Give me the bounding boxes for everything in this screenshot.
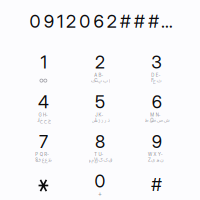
staticText: 7 <box>39 131 48 152</box>
staticText: 9 <box>152 131 162 152</box>
staticText: 0912062#### <box>29 10 173 32</box>
staticText: 2 <box>95 51 105 73</box>
staticText: MNO <box>150 112 163 117</box>
staticText: 4 <box>38 91 49 112</box>
staticText: ظ ع غ ف <box>35 155 51 165</box>
staticText: ن ه ی <box>151 155 163 165</box>
button[interactable]: 1 <box>15 42 72 82</box>
staticText: + <box>98 190 102 198</box>
staticText: JKL <box>95 112 105 117</box>
staticText: 3 <box>151 51 162 73</box>
button[interactable]: 4 <box>15 82 72 122</box>
button[interactable]: 7 <box>15 122 72 161</box>
staticText: ا ب پ ت <box>91 75 110 86</box>
staticText: 0 <box>95 171 106 192</box>
button[interactable]: 9 <box>128 122 185 161</box>
staticText: ش ص ض ط <box>144 115 169 125</box>
staticText: 1 <box>40 51 46 73</box>
staticText: 6 <box>152 91 162 112</box>
staticText: ث ج <box>152 75 161 86</box>
staticText: TUV <box>94 152 106 157</box>
staticText: ABC <box>94 72 106 78</box>
staticText: DEF <box>151 72 162 78</box>
button[interactable]: 3 <box>128 42 185 82</box>
staticText: PQRS <box>35 152 52 157</box>
button[interactable]: 2 <box>72 42 128 82</box>
button[interactable]: 6 <box>128 82 185 122</box>
staticText: چ ح خ د <box>36 115 50 125</box>
button[interactable]: Pound <box>128 161 185 200</box>
staticText: ذ ر ز ژ س <box>91 115 109 125</box>
button[interactable]: 8 <box>72 122 128 161</box>
staticText: 8 <box>95 131 105 152</box>
button[interactable]: Star <box>15 161 72 200</box>
staticText: # <box>151 174 162 195</box>
staticText: GHI <box>38 112 48 117</box>
button[interactable]: 5 <box>72 82 128 122</box>
staticText: 5 <box>95 91 105 112</box>
staticText: WXYZ <box>148 152 165 157</box>
button[interactable]: 0 <box>72 161 128 200</box>
staticText: ق ک گ ل م و <box>88 155 112 165</box>
